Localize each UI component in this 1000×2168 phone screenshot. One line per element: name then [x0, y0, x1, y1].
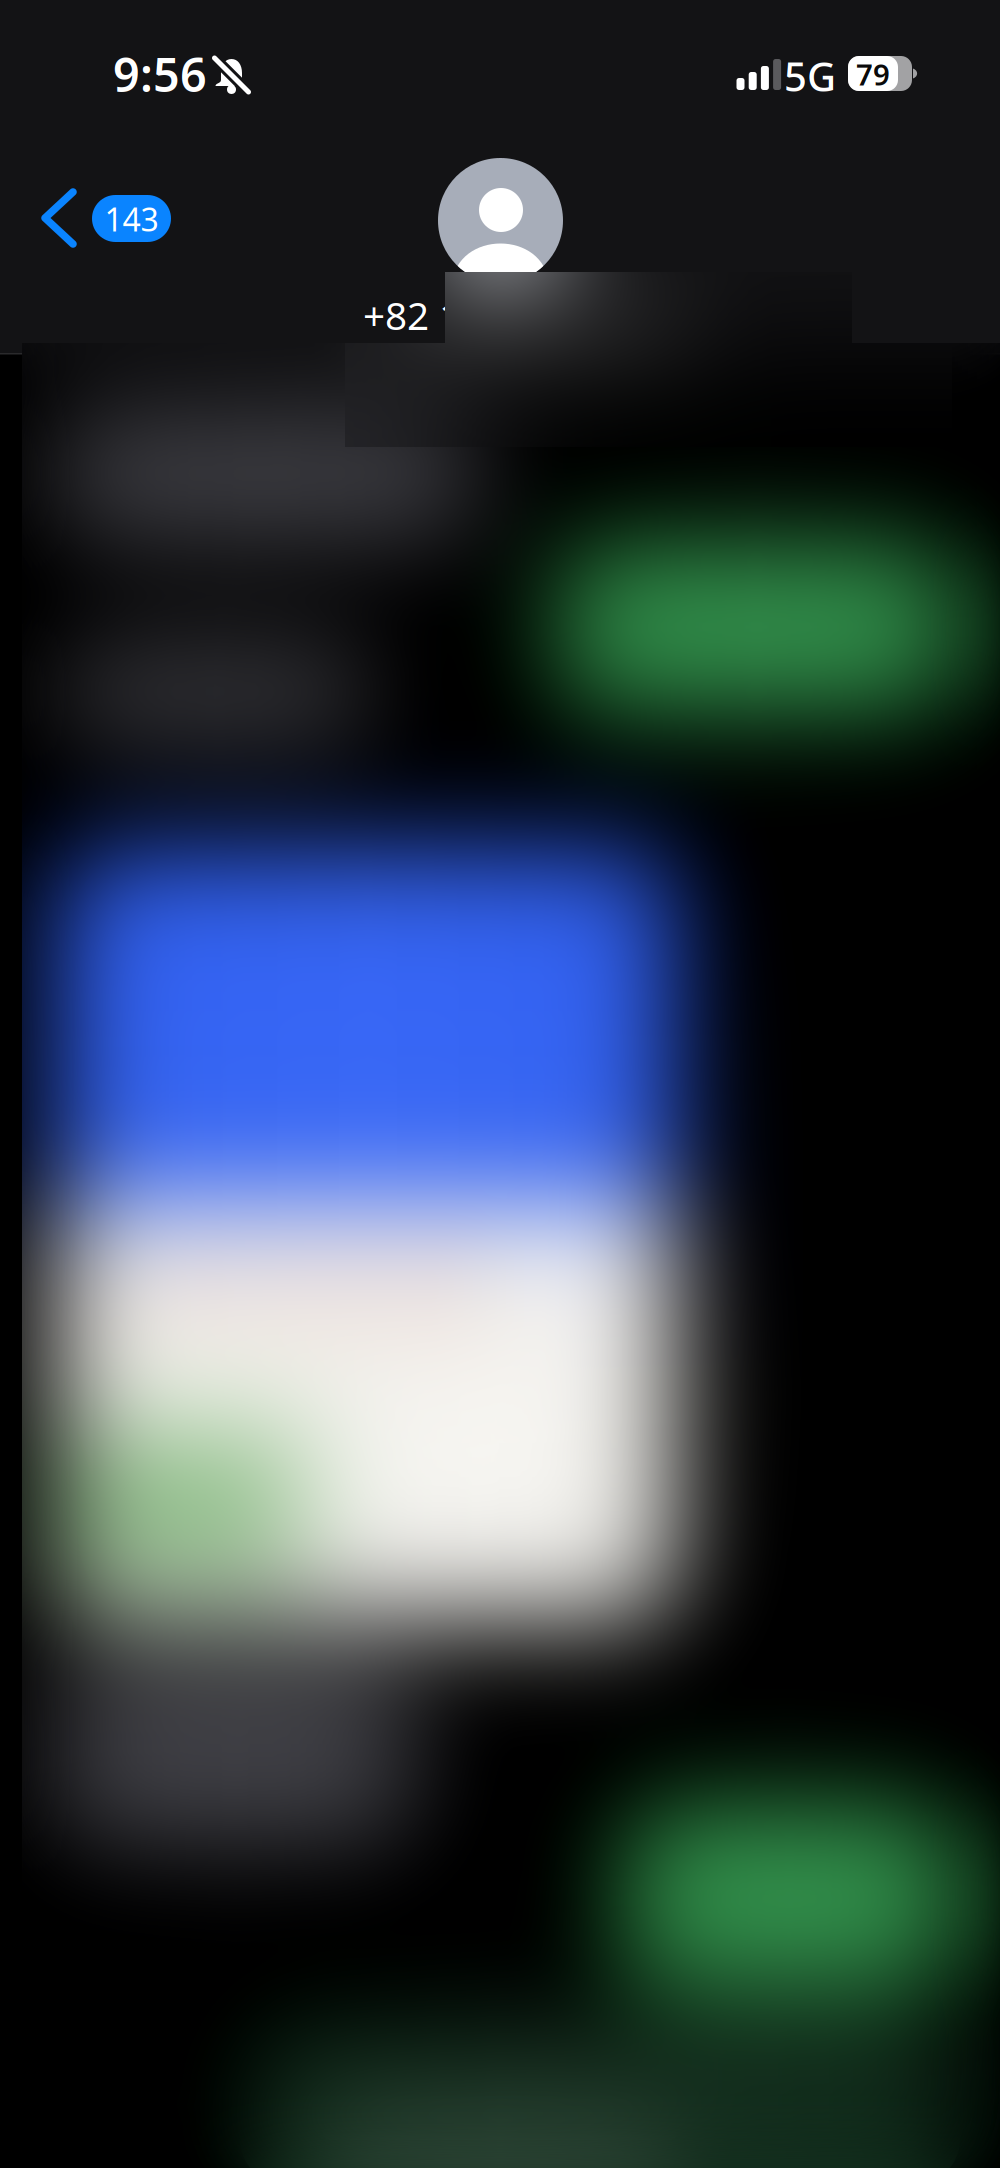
button[interactable]: +82 10-0000-0000: [291, 150, 711, 340]
staticText: +82 10-0000-0000: [363, 289, 683, 341]
staticText: 9:56: [113, 43, 207, 105]
staticText: 79: [856, 54, 890, 93]
staticText: 143: [104, 198, 158, 240]
button[interactable]: 143: [28, 175, 188, 261]
staticText: 5G: [784, 49, 836, 102]
